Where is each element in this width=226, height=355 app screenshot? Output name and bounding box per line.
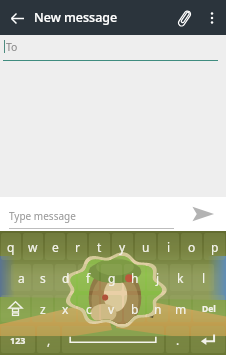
staticText: .: [176, 332, 180, 348]
button[interactable]: [1, 295, 30, 322]
button[interactable]: More options: [199, 5, 225, 31]
staticText: k: [177, 270, 184, 286]
staticText: l: [202, 270, 206, 286]
button[interactable]: z: [32, 295, 53, 322]
button[interactable]: t: [89, 233, 110, 260]
staticText: e: [52, 239, 59, 255]
button[interactable]: e: [45, 233, 65, 260]
staticText: h: [131, 270, 139, 286]
staticText: y: [119, 239, 126, 255]
staticText: Type message: [9, 209, 76, 223]
button[interactable]: v: [101, 295, 122, 322]
staticText: g: [108, 270, 116, 286]
button[interactable]: f: [78, 264, 99, 291]
staticText: New message: [34, 9, 118, 26]
button[interactable]: p: [204, 233, 225, 260]
button[interactable]: g: [101, 264, 122, 291]
button[interactable]: x: [55, 295, 76, 322]
button[interactable]: l: [193, 264, 214, 291]
button[interactable]: j: [147, 264, 168, 291]
button[interactable]: Attach file: [169, 3, 199, 33]
staticText: o: [188, 239, 196, 255]
staticText: Del: [202, 303, 216, 315]
staticText: w: [28, 239, 38, 255]
staticText: p: [211, 239, 219, 255]
staticText: i: [167, 239, 171, 255]
button[interactable]: w: [23, 233, 43, 260]
staticText: n: [154, 301, 162, 317]
staticText: 123: [10, 334, 26, 346]
button[interactable]: c: [78, 295, 99, 322]
staticText: d: [62, 270, 70, 286]
button[interactable]: h: [124, 264, 145, 291]
button[interactable]: [62, 326, 164, 353]
staticText: m: [175, 301, 187, 317]
button[interactable]: r: [67, 233, 87, 260]
button[interactable]: d: [55, 264, 76, 291]
staticText: q: [7, 239, 15, 255]
button[interactable]: ,: [37, 326, 60, 353]
staticText: To: [6, 40, 18, 54]
button[interactable]: Del: [193, 295, 225, 322]
button[interactable]: k: [170, 264, 191, 291]
staticText: v: [108, 301, 115, 317]
button[interactable]: u: [135, 233, 156, 260]
button[interactable]: m: [170, 295, 191, 322]
button[interactable]: q: [1, 233, 21, 260]
staticText: f: [86, 270, 91, 286]
staticText: c: [86, 301, 92, 317]
staticText: j: [156, 270, 160, 286]
staticText: u: [142, 239, 150, 255]
staticText: b: [131, 301, 139, 317]
staticText: z: [40, 301, 46, 317]
button[interactable]: Back: [0, 1, 34, 35]
staticText: r: [75, 239, 80, 255]
button[interactable]: b: [124, 295, 145, 322]
button[interactable]: Send: [180, 197, 226, 231]
staticText: x: [62, 301, 69, 317]
button[interactable]: o: [181, 233, 202, 260]
button[interactable]: Type message: [9, 197, 174, 231]
button[interactable]: i: [158, 233, 179, 260]
button[interactable]: a: [11, 264, 31, 291]
button[interactable]: s: [33, 264, 53, 291]
button[interactable]: [191, 326, 225, 353]
staticText: t: [97, 239, 102, 255]
button[interactable]: y: [112, 233, 133, 260]
staticText: s: [40, 270, 46, 286]
staticText: ,: [47, 332, 51, 348]
staticText: a: [18, 270, 25, 286]
button[interactable]: 123: [1, 326, 35, 353]
button[interactable]: n: [147, 295, 168, 322]
button[interactable]: .: [166, 326, 189, 353]
